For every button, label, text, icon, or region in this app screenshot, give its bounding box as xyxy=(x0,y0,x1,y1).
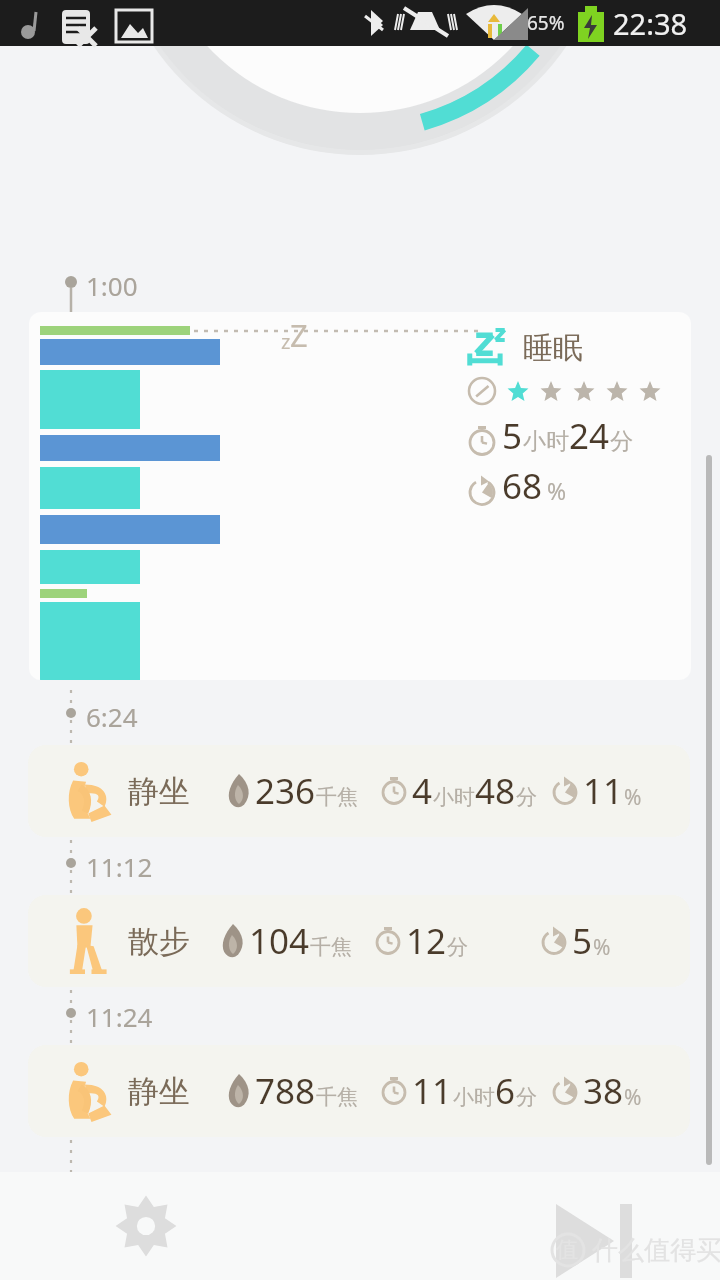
button[interactable]: 静坐 xyxy=(28,1045,690,1137)
staticText: 什么值得买 xyxy=(592,1234,720,1267)
staticText: 22:38 xyxy=(613,4,688,43)
staticText: % xyxy=(547,475,567,506)
staticText: 236 xyxy=(255,767,316,815)
staticText: 65% xyxy=(527,10,565,36)
staticText: 千焦 xyxy=(316,1084,358,1110)
staticText: 11 xyxy=(583,767,624,815)
staticText: 68 xyxy=(502,462,543,510)
staticText: 小时 xyxy=(433,784,475,810)
staticText: % xyxy=(624,783,642,812)
staticText: 5 xyxy=(502,412,523,460)
staticText: 小时 xyxy=(453,1084,495,1110)
staticText: 788 xyxy=(255,1067,316,1115)
button[interactable]: Next xyxy=(538,1186,618,1266)
staticText: 48 xyxy=(475,767,516,815)
staticText: 11:12 xyxy=(86,849,153,884)
staticText: 睡眠 xyxy=(523,329,583,367)
button[interactable]: 静坐 xyxy=(28,745,690,837)
staticText: 6:24 xyxy=(86,699,138,734)
staticText: 6 xyxy=(495,1067,516,1115)
staticText: 12 xyxy=(406,917,447,965)
staticText: z xyxy=(281,328,291,355)
staticText: 静坐 xyxy=(128,1072,190,1111)
staticText: 5 xyxy=(572,917,593,965)
staticText: 静坐 xyxy=(128,772,190,811)
staticText: 千焦 xyxy=(316,784,358,810)
button[interactable]: z xyxy=(29,312,691,680)
button[interactable]: 散步 xyxy=(28,895,690,987)
staticText: 散步 xyxy=(128,922,190,961)
staticText: 分 xyxy=(447,934,468,960)
staticText: 小时 xyxy=(523,427,569,456)
staticText: 分 xyxy=(516,1084,537,1110)
staticText: 38 xyxy=(583,1067,624,1115)
staticText: 分 xyxy=(516,784,537,810)
staticText: 11 xyxy=(412,1067,453,1115)
staticText: Z xyxy=(290,314,308,356)
staticText: 1:00 xyxy=(86,268,138,303)
button[interactable]: Settings xyxy=(108,1188,184,1264)
staticText: 分 xyxy=(610,427,633,456)
staticText: 104 xyxy=(249,917,310,965)
staticText: 24 xyxy=(569,412,610,460)
staticText: % xyxy=(624,1083,642,1112)
staticText: 千焦 xyxy=(310,934,352,960)
staticText: % xyxy=(593,933,611,962)
staticText: 4 xyxy=(412,767,433,815)
staticText: 11:24 xyxy=(86,999,153,1034)
